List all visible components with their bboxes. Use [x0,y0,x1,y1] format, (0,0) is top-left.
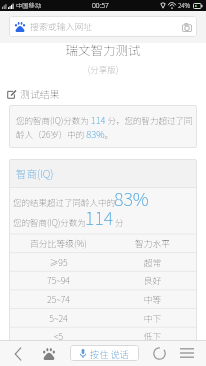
staticText: (分享版) [0,63,206,75]
staticText: 75~94 [9,274,108,287]
staticText: ≥95 [9,256,108,269]
staticText: 24% [178,1,191,10]
staticText: 测试结果 [20,87,60,101]
staticText: 您的智商(IQ)分数为 [13,216,86,228]
button[interactable]: 搜索或输入网址 [9,16,197,37]
staticText: 您的结果超过了同龄人中的 [13,196,116,208]
staticText: 5~24 [9,312,108,325]
staticText: 瑞文智力测试 [0,40,206,58]
staticText: 超常 [108,256,197,269]
staticText: 百分比等级(%) [9,237,108,250]
button[interactable]: 按住 说话 [70,345,139,361]
button[interactable]: Camera search [179,19,195,35]
staticText: 低下 [108,330,197,343]
staticText: 您的智商(IQ)分数为 114 分，您的智力超过了同龄人（26岁）中的 83%。 [16,113,194,141]
staticText: 114 [85,204,114,230]
staticText: <5 [9,330,108,343]
staticText: 智商(IQ) [16,166,54,181]
staticText: 良好 [108,274,197,287]
staticText: 搜索或输入网址 [30,20,93,33]
staticText: 智力水平 [108,237,197,250]
button[interactable]: Baidu home [36,345,61,362]
staticText: 中等 [108,293,197,306]
staticText: 25~74 [9,293,108,306]
staticText: 中下 [108,312,197,325]
staticText: 中国移动 [16,1,42,10]
button[interactable]: Back [5,345,30,362]
staticText: 按住 说话 [90,347,129,360]
staticText: 83% [114,185,149,211]
button[interactable]: Refresh [147,344,172,362]
staticText: 00:57 [92,0,109,11]
button[interactable]: Menu [174,344,199,362]
staticText: 分 [115,216,124,228]
